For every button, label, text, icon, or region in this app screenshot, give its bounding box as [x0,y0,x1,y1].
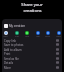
staticText: Drive [45,35,50,37]
staticText: creations [23,8,42,14]
staticText: My creation [9,24,25,28]
staticText: Send as file [4,57,19,61]
button[interactable]: More [56,31,61,37]
button[interactable]: Msg [24,31,29,37]
staticText: Share your [21,2,43,8]
staticText: Copy [3,35,8,37]
button[interactable]: Print [2,51,62,56]
button[interactable]: Copy link [2,38,62,43]
staticText: Save to photos [4,43,24,47]
button[interactable]: Send as file [2,56,62,61]
staticText: Mail [36,35,40,37]
button[interactable]: Mail [35,31,40,37]
button[interactable]: My creation [4,24,62,28]
staticText: Copy link [4,39,16,43]
staticText: Chat [15,35,19,37]
staticText: More [56,35,61,37]
button[interactable]: Drive [45,31,50,37]
staticText: Print [4,52,11,56]
staticText: Details [4,61,13,65]
button[interactable]: Save to photos [2,42,62,47]
button[interactable]: Copy [3,31,8,37]
staticText: Add to album [4,48,22,52]
staticText: Msg [25,35,29,37]
button[interactable]: Add to album [2,47,62,52]
button[interactable]: More [2,65,62,70]
staticText: More [4,66,11,70]
button[interactable]: Details [2,60,62,65]
button[interactable]: Chat [14,31,19,37]
